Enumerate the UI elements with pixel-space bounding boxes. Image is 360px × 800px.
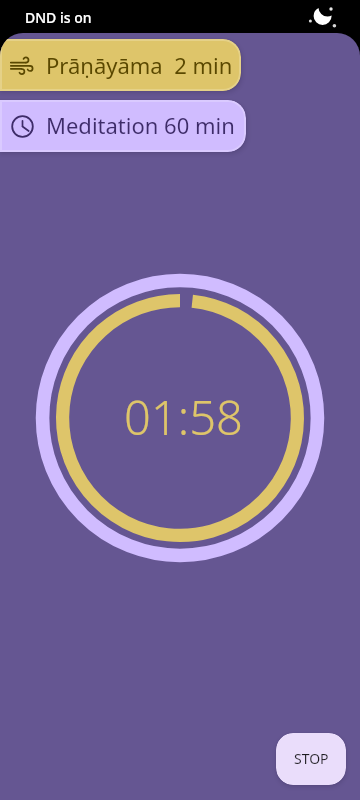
staticText: STOP bbox=[294, 749, 329, 768]
other: Do not disturb bbox=[306, 3, 340, 31]
staticText: Meditation 60 min bbox=[46, 110, 235, 140]
staticText: 01:58 bbox=[124, 385, 243, 449]
button[interactable]: Meditation 60 min bbox=[0, 100, 246, 152]
staticText: Prāṇāyāma 2 min bbox=[46, 50, 233, 80]
button[interactable]: Prāṇāyāma 2 min bbox=[0, 39, 241, 91]
staticText: DND is on bbox=[25, 8, 92, 27]
button[interactable]: STOP bbox=[276, 733, 346, 785]
